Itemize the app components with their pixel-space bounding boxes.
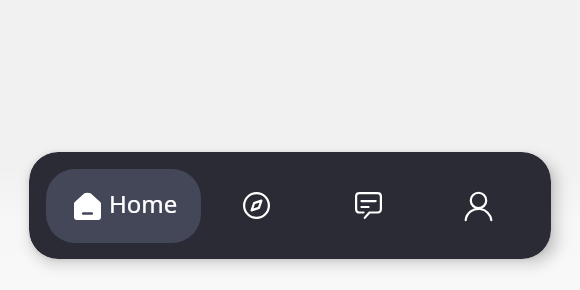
button[interactable]: Home (46, 169, 201, 243)
button[interactable]: Profile (448, 175, 508, 235)
button[interactable]: Messages (338, 175, 398, 235)
staticText: Home (109, 187, 178, 220)
button[interactable]: Explore (226, 175, 286, 235)
